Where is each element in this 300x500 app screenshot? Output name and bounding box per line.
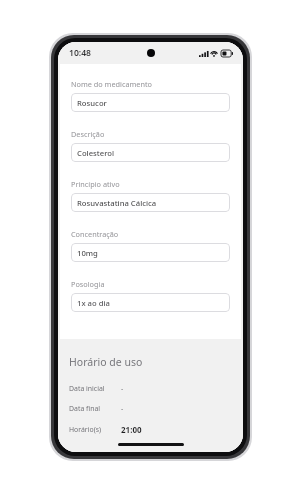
staticText: 10mg [77,248,98,258]
staticText: 10:48 [69,47,92,59]
staticText: Princípio ativo [71,179,120,189]
staticText: Colesterol [77,148,115,158]
staticText: Concentração [71,229,119,239]
button[interactable]: Rosuvastatina Cálcica [71,193,230,212]
staticText: - [121,384,124,393]
button[interactable]: Data final [69,404,232,413]
staticText: Data inicial [69,384,105,393]
staticText: Rosucor [77,98,107,108]
button[interactable]: Data inicial [69,384,232,393]
button[interactable]: 10mg [71,243,230,262]
staticText: Horário de uso [69,355,143,369]
staticText: 1x ao dia [77,298,110,308]
staticText: Rosuvastatina Cálcica [77,198,157,208]
staticText: Data final [69,404,101,413]
staticText: Descrição [71,129,105,139]
staticText: Horário(s) [69,425,102,434]
other: Home [118,443,184,446]
button[interactable]: Horário(s) [69,424,232,435]
staticText: 21:00 [121,424,142,435]
button[interactable]: 1x ao dia [71,293,230,312]
button[interactable]: Rosucor [71,93,230,112]
button[interactable]: Colesterol [71,143,230,162]
staticText: Nome do medicamento [71,79,152,89]
staticText: - [121,404,124,413]
staticText: Posologia [71,279,105,289]
